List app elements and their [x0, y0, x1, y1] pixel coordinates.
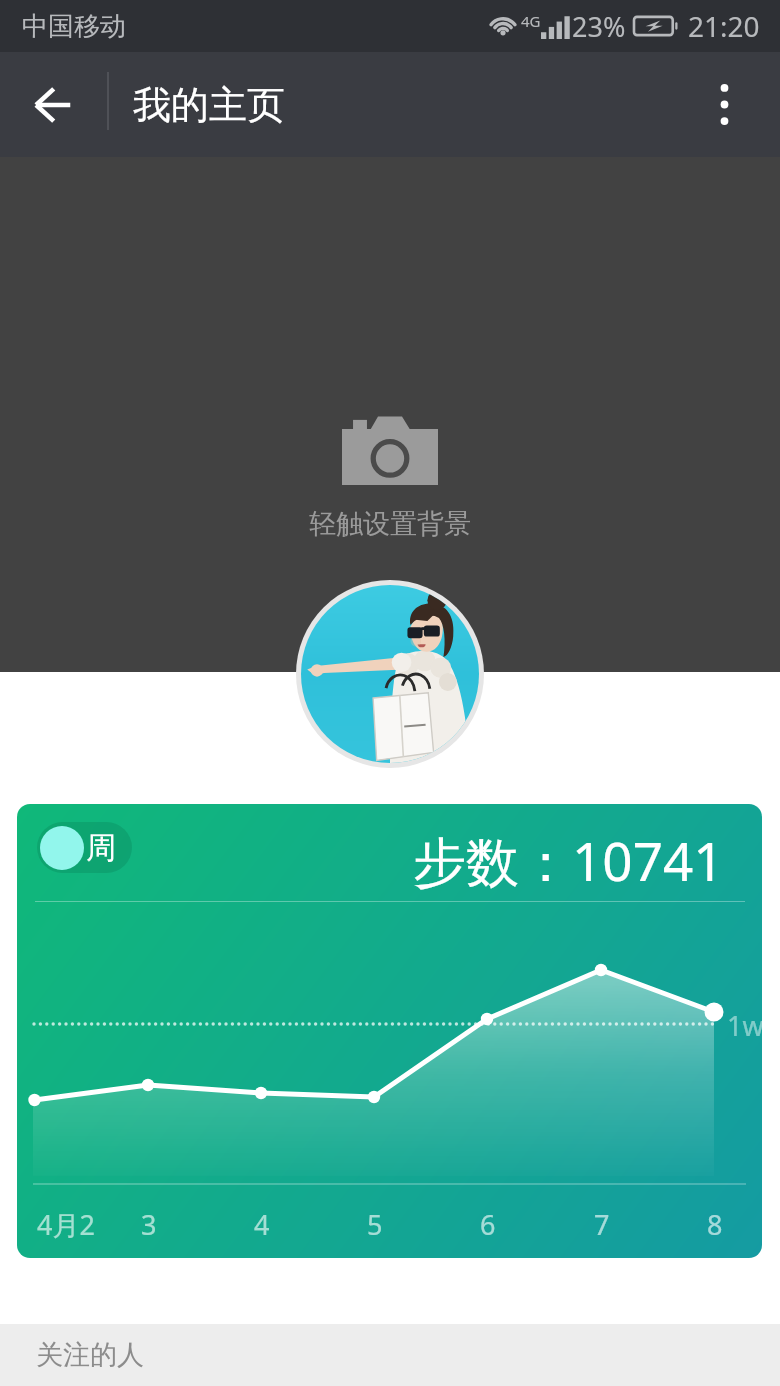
button[interactable]: Back	[5, 52, 100, 157]
staticText: 周	[86, 829, 116, 867]
staticText: 3	[141, 1206, 157, 1243]
staticText: 4月2	[37, 1206, 95, 1243]
staticText: 21:20	[688, 7, 760, 45]
staticText: 步数：10741	[413, 824, 724, 896]
staticText: 关注的人	[36, 1338, 144, 1372]
button[interactable]: 周	[17, 804, 762, 1258]
staticText: 1w	[727, 1007, 762, 1044]
staticText: 23%	[572, 8, 626, 45]
staticText: 中国移动	[22, 10, 126, 43]
button[interactable]: 关注的人	[0, 1324, 780, 1386]
staticText: 6	[480, 1206, 496, 1243]
staticText: 轻触设置背景	[309, 507, 471, 541]
button[interactable]: More options	[679, 52, 769, 157]
staticText: 4	[254, 1206, 270, 1243]
staticText: 我的主页	[133, 81, 285, 129]
staticText: 5	[367, 1206, 383, 1243]
staticText: 4G	[521, 11, 541, 31]
button[interactable]: Profile photo	[301, 585, 479, 763]
button[interactable]: Set background image	[0, 157, 780, 672]
button[interactable]: 周	[37, 822, 132, 873]
staticText: 7	[594, 1206, 610, 1243]
staticText: 8	[707, 1206, 723, 1243]
